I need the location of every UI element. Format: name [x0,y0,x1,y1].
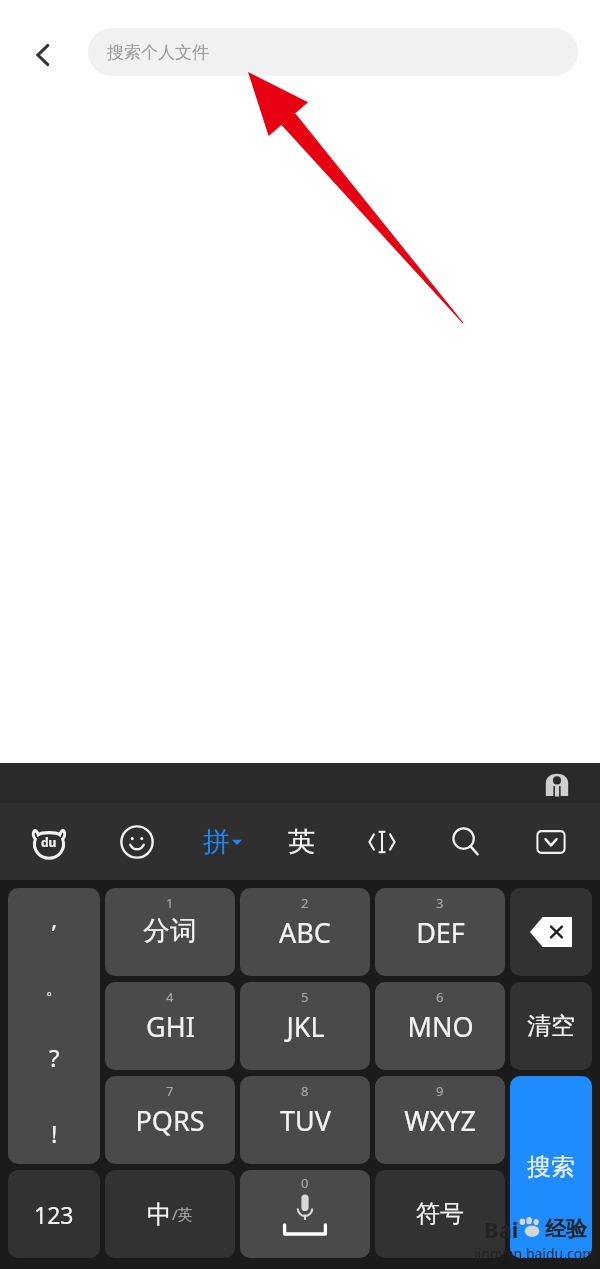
button[interactable]: Hide keyboard [519,803,583,880]
staticText: TUV [280,1102,331,1139]
staticText: 7 [166,1082,174,1100]
button[interactable]: 搜索 [510,1076,592,1258]
staticText: 分词 [143,914,197,948]
staticText: JKL [286,1008,325,1045]
staticText: 清空 [527,1011,575,1041]
button[interactable]: Baidu emoji [17,803,81,880]
button[interactable]: 拼 [190,803,254,880]
staticText: WXYZ [404,1102,476,1139]
button[interactable]: 9 [375,1076,505,1164]
button[interactable]: 3 [375,888,505,976]
staticText: du [41,834,57,850]
button[interactable]: 123 [8,1170,100,1258]
staticText: 6 [436,988,444,1006]
staticText: 9 [436,1082,444,1100]
staticText: PQRS [135,1102,205,1139]
staticText: 8 [301,1082,309,1100]
staticText: jingyan.baidu.com [474,1244,596,1263]
button[interactable]: 搜索个人文件 [88,28,578,76]
button[interactable]: Backspace [510,888,592,976]
button[interactable]: 6 [375,982,505,1070]
staticText: 3 [436,894,444,912]
staticText: ABC [279,914,331,951]
button[interactable]: 7 [105,1076,235,1164]
button[interactable]: 8 [240,1076,370,1164]
button[interactable]: Move cursor [350,803,414,880]
button[interactable]: , [8,888,100,1164]
button[interactable]: Back [14,26,72,84]
staticText: 2 [301,894,309,912]
other: Backspace [510,888,592,976]
staticText: 0 [301,1174,309,1192]
staticText: ! [51,1117,58,1150]
staticText: 中 [147,1199,172,1230]
button[interactable]: 5 [240,982,370,1070]
staticText: ? [49,1041,60,1074]
staticText: 英 [288,825,315,859]
staticText: 符号 [416,1199,464,1229]
staticText: GHI [146,1008,195,1045]
staticText: Bai [484,1214,519,1244]
button[interactable]: 符号 [375,1170,505,1258]
button[interactable]: 1 [105,888,235,976]
button[interactable]: 4 [105,982,235,1070]
staticText: 1 [166,894,174,912]
button[interactable]: 英 [269,803,333,880]
staticText: 拼 [203,825,230,859]
staticText: 搜索个人文件 [107,42,209,63]
other: Space and voice input [240,1170,370,1258]
staticText: 。 [46,978,63,999]
staticText: , [51,902,58,935]
button[interactable]: 中 [105,1170,235,1258]
button[interactable]: Input method logo [540,766,574,800]
staticText: 5 [301,988,309,1006]
button[interactable]: 清空 [510,982,592,1070]
staticText: 123 [34,1199,74,1230]
staticText: MNO [407,1008,474,1045]
staticText: 经验 [545,1216,587,1242]
staticText: /英 [172,1204,193,1224]
button[interactable]: 2 [240,888,370,976]
staticText: 搜索 [527,1152,575,1182]
button[interactable]: Space and voice input [240,1170,370,1258]
staticText: DEF [416,914,465,951]
button[interactable]: Search [434,803,498,880]
button[interactable]: Emoji [105,803,169,880]
staticText: 4 [166,988,174,1006]
